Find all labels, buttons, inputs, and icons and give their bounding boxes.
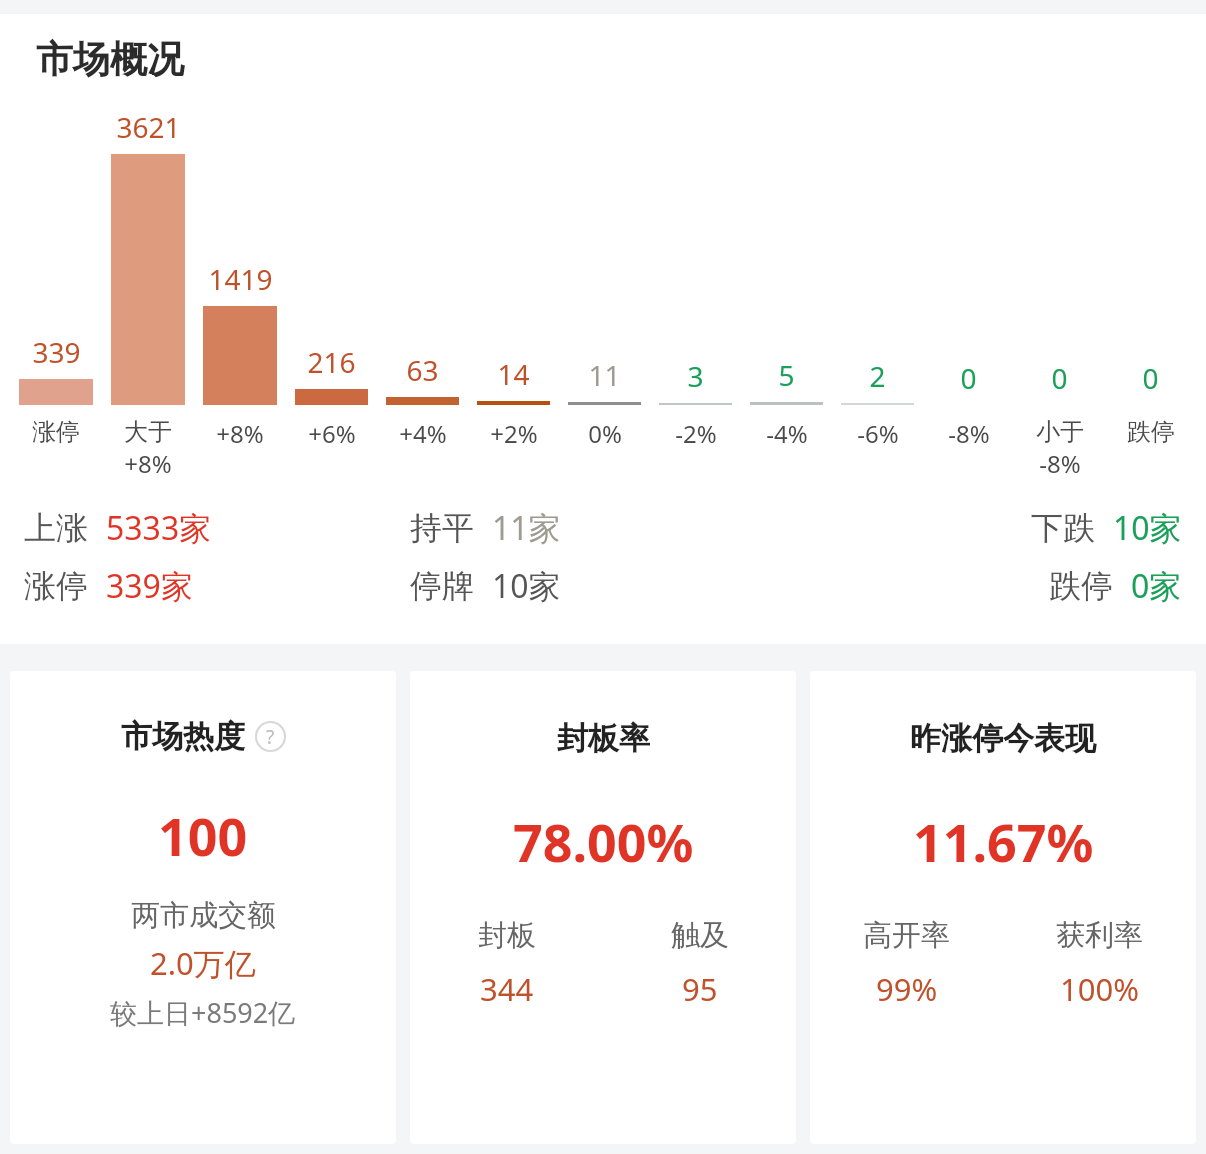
staticText: 3 xyxy=(687,357,704,395)
staticText: -4% xyxy=(766,417,808,450)
staticText: 1419 xyxy=(208,260,273,298)
staticText: 3621 xyxy=(116,108,181,146)
staticText: 高开率 xyxy=(863,917,950,954)
button[interactable]: 涨停 xyxy=(24,564,410,608)
staticText: 10家 xyxy=(492,564,561,608)
staticText: 14 xyxy=(497,355,530,393)
staticText: -6% xyxy=(857,417,899,450)
staticText: 0% xyxy=(588,417,622,450)
staticText: -8% xyxy=(948,417,990,450)
staticText: 涨停 xyxy=(32,417,80,447)
staticText: 市场热度 xyxy=(121,717,245,756)
staticText: +8% xyxy=(216,417,264,450)
staticText: 5333家 xyxy=(106,506,212,550)
staticText: 跌停 xyxy=(1127,417,1175,447)
staticText: 5 xyxy=(778,356,795,394)
staticText: 100% xyxy=(1060,968,1139,1010)
staticText: 10家 xyxy=(1113,506,1182,550)
staticText: 上涨 xyxy=(24,508,88,548)
button[interactable]: 上涨 xyxy=(24,506,410,550)
staticText: 涨停 xyxy=(24,566,88,606)
staticText: 小于 xyxy=(1036,417,1084,447)
staticText: 339家 xyxy=(106,564,193,608)
staticText: 0 xyxy=(960,359,977,397)
staticText: 昨涨停今表现 xyxy=(910,719,1096,758)
button[interactable]: 停牌 xyxy=(410,564,796,608)
staticText: 持平 xyxy=(410,508,474,548)
staticText: -2% xyxy=(675,417,717,450)
staticText: 339 xyxy=(32,333,81,371)
staticText: +6% xyxy=(308,417,356,450)
staticText: 216 xyxy=(307,343,356,381)
staticText: 63 xyxy=(406,351,439,389)
staticText: 大于 xyxy=(124,417,172,447)
staticText: 跌停 xyxy=(1049,566,1113,606)
staticText: +4% xyxy=(399,417,447,450)
staticText: 100 xyxy=(158,800,248,871)
staticText: +2% xyxy=(490,417,538,450)
staticText: 获利率 xyxy=(1056,917,1143,954)
staticText: 较上日+8592亿 xyxy=(110,994,296,1031)
staticText: 下跌 xyxy=(1031,508,1095,548)
staticText: 11家 xyxy=(492,506,561,550)
staticText: +8% xyxy=(124,447,172,480)
staticText: 2.0万亿 xyxy=(150,942,256,984)
button[interactable]: 跌停 xyxy=(796,564,1182,608)
staticText: 95 xyxy=(682,968,718,1010)
staticText: 11.67% xyxy=(913,806,1094,877)
staticText: 封板率 xyxy=(557,719,650,758)
button[interactable]: 帮助 xyxy=(255,721,286,752)
staticText: 344 xyxy=(480,968,534,1010)
staticText: ? xyxy=(266,724,275,750)
staticText: -8% xyxy=(1039,447,1081,480)
staticText: 封板 xyxy=(478,917,536,954)
staticText: 99% xyxy=(876,968,938,1010)
staticText: 2 xyxy=(869,357,886,395)
staticText: 市场概况 xyxy=(36,36,184,83)
button[interactable]: 市场热度 xyxy=(10,671,396,1144)
button[interactable]: 封板率 xyxy=(410,671,796,1144)
staticText: 11 xyxy=(588,356,621,394)
staticText: 触及 xyxy=(671,917,729,954)
button[interactable]: 昨涨停今表现 xyxy=(810,671,1196,1144)
staticText: 0家 xyxy=(1131,564,1182,608)
staticText: 78.00% xyxy=(513,806,694,877)
staticText: 0 xyxy=(1051,359,1068,397)
button[interactable]: 下跌 xyxy=(796,506,1182,550)
staticText: 停牌 xyxy=(410,566,474,606)
staticText: 0 xyxy=(1142,359,1159,397)
button[interactable]: 持平 xyxy=(410,506,796,550)
staticText: 两市成交额 xyxy=(131,897,276,934)
